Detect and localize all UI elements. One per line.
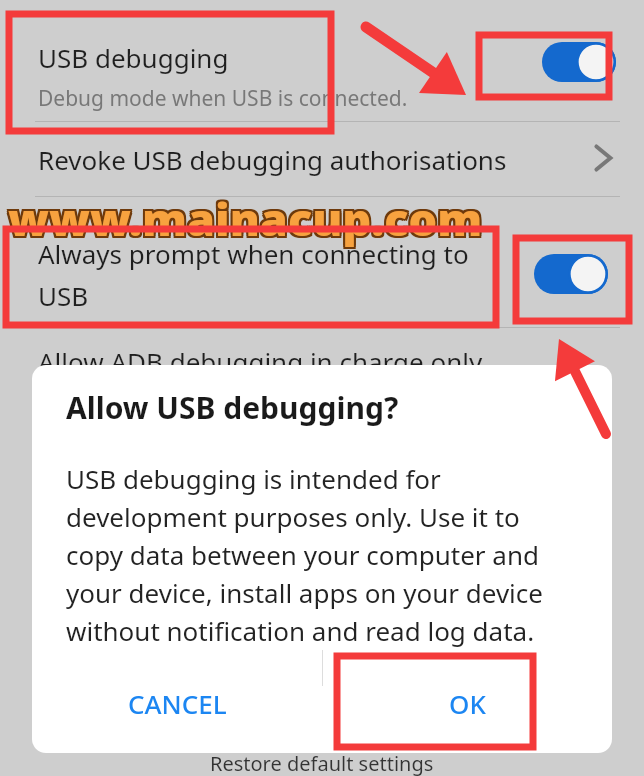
button[interactable]: Always prompt when connecting to USB (0, 232, 644, 322)
button[interactable]: Always prompt toggle (528, 248, 614, 300)
staticText: www.mainacup.com (8, 190, 483, 251)
staticText: CANCEL (128, 686, 227, 721)
button[interactable]: CANCEL (32, 655, 322, 751)
staticText: Allow USB debugging? (66, 387, 399, 428)
staticText: Revoke USB debugging authorisations (38, 142, 507, 177)
button[interactable]: Revoke USB debugging authorisations (0, 126, 644, 188)
button[interactable]: USB debugging (0, 18, 644, 122)
staticText: Always prompt when connecting to USB (38, 236, 469, 314)
staticText: www.mainacup.com (10, 188, 485, 249)
staticText: Restore default settings (210, 750, 434, 776)
staticText: Debug mode when USB is connected. (38, 84, 408, 113)
staticText: USB debugging (38, 40, 229, 75)
staticText: www.mainacup.com (6, 190, 481, 251)
button[interactable]: Allow ADB debugging in charge only (0, 334, 644, 390)
button[interactable]: OK (322, 655, 612, 751)
staticText: www.mainacup.com (8, 188, 483, 249)
button[interactable]: USB debugging toggle (536, 36, 622, 88)
button[interactable]: Restore default settings (0, 750, 644, 776)
staticText: OK (449, 686, 486, 721)
staticText: www.mainacup.com (8, 186, 483, 247)
staticText: USB debugging is intended for developmen… (66, 461, 543, 648)
staticText: www.mainacup.com (6, 186, 481, 247)
staticText: www.mainacup.com (10, 186, 485, 247)
staticText: www.mainacup.com (6, 188, 481, 249)
staticText: Allow ADB debugging in charge only (38, 344, 483, 379)
staticText: www.mainacup.com (10, 190, 485, 251)
